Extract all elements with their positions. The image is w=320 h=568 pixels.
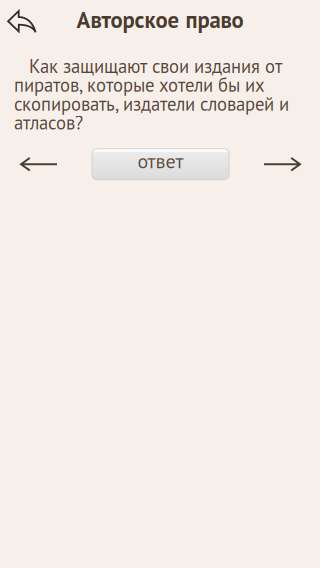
button[interactable]: Предыдущий вопрос (18, 149, 74, 185)
staticText: Как защищают свои издания от пиратов, ко… (14, 54, 289, 135)
button[interactable]: Следующий вопрос (261, 149, 317, 185)
button[interactable]: Назад (0, 0, 46, 39)
staticText: Авторское право (76, 5, 243, 34)
staticText: ответ (137, 148, 183, 174)
button[interactable]: ответ (92, 149, 229, 180)
